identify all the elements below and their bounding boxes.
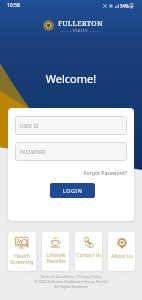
button[interactable]: About Us [108, 232, 135, 271]
staticText: FULLERTON [58, 18, 103, 28]
staticText: LOGIN [63, 187, 83, 194]
other: Contact Us [84, 237, 94, 248]
other: Lifestyle Benefits [50, 237, 61, 248]
staticText: 54% [120, 3, 129, 9]
button[interactable]: Health Screening [8, 232, 36, 271]
staticText: HEALTH [73, 29, 88, 33]
button[interactable]: USER ID [15, 116, 127, 135]
button[interactable]: Lifestyle Benefits [42, 232, 69, 271]
staticText: Health Screening [10, 253, 34, 266]
staticText: 10:58 [7, 2, 20, 9]
button[interactable]: Forgot Password? [71, 168, 127, 177]
button[interactable]: PASSWORD [15, 142, 127, 161]
staticText: About Us [111, 253, 133, 260]
other: About Us [117, 237, 127, 249]
staticText: Contact Us [76, 252, 102, 259]
staticText: Terms & Conditions | Privacy Policy © 20… [0, 274, 142, 289]
staticText: Lifestyle Benefits [46, 252, 66, 265]
button[interactable]: Contact Us [75, 232, 102, 271]
staticText: Welcome! [0, 71, 142, 86]
staticText: PASSWORD [20, 149, 46, 155]
staticText: USER ID [20, 123, 39, 129]
button[interactable]: LOGIN [50, 183, 95, 198]
other: Health Screening [15, 237, 30, 249]
